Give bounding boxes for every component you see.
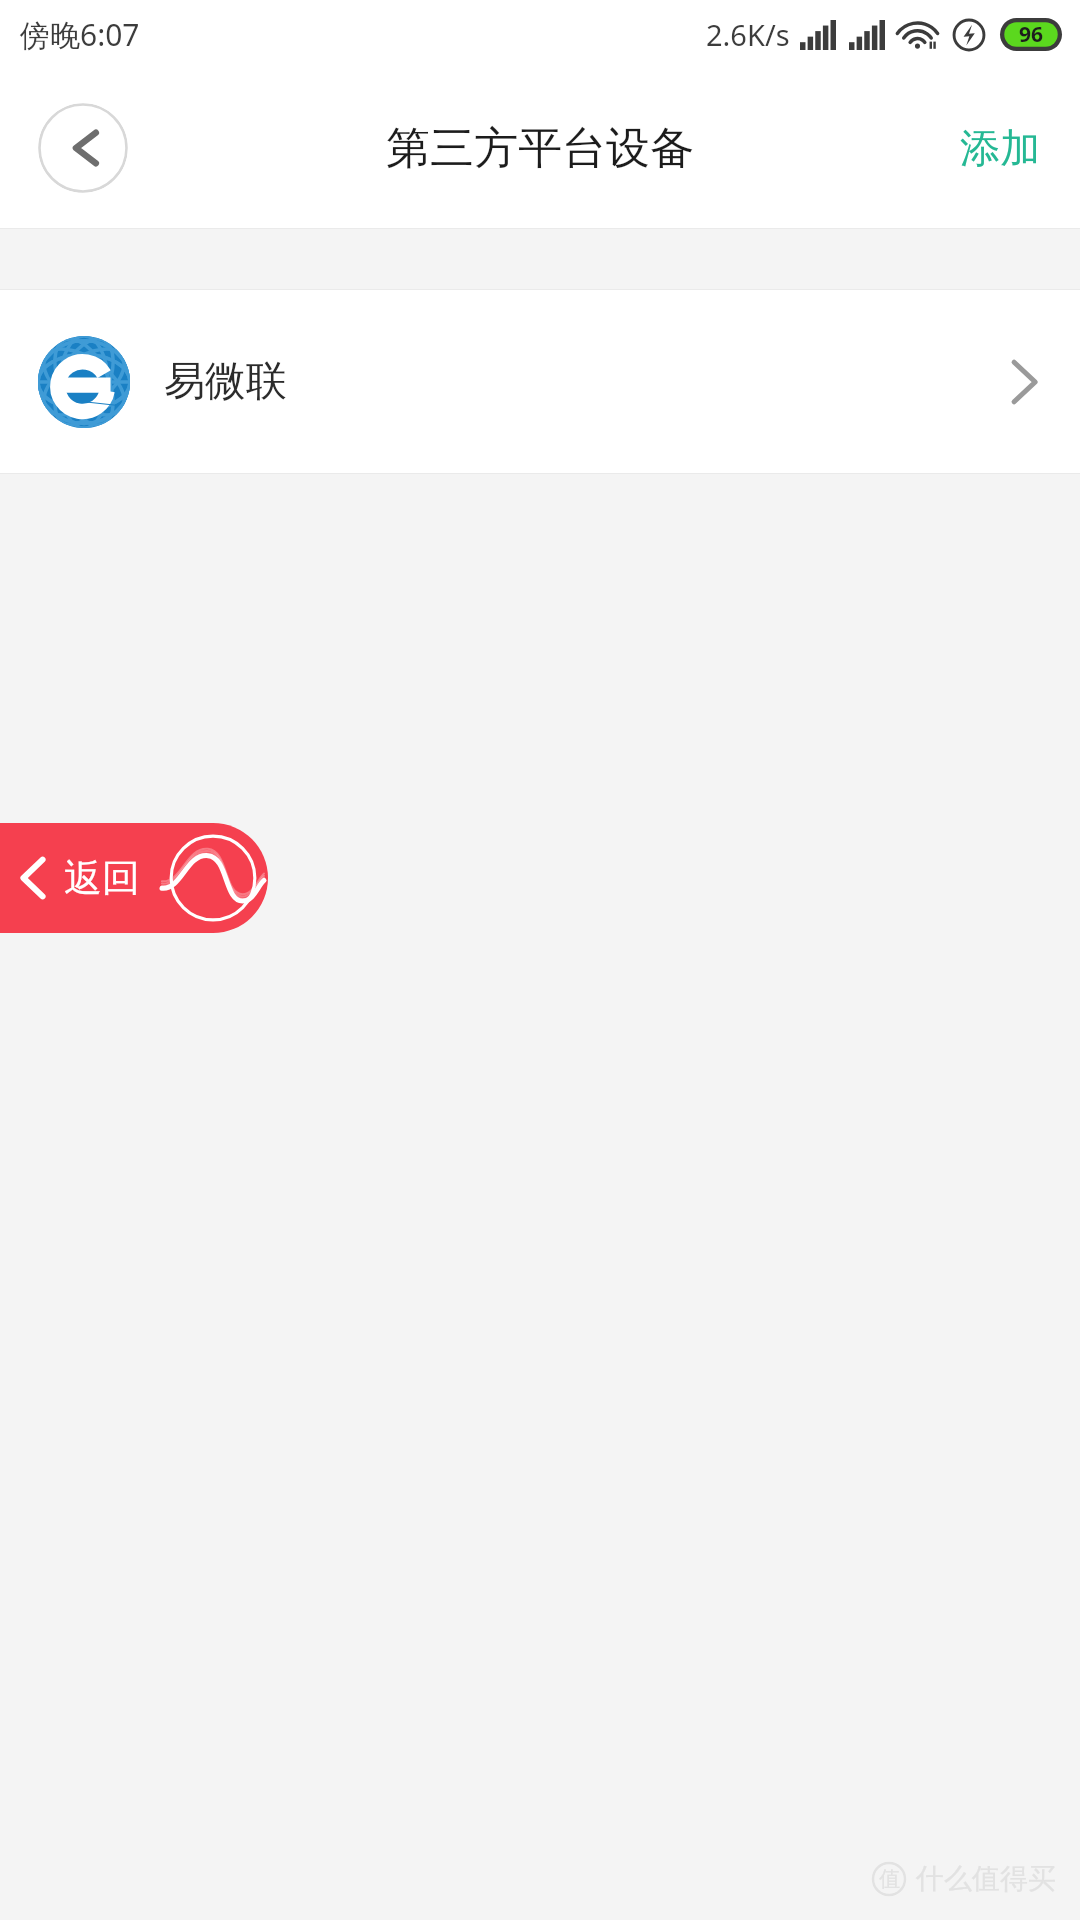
button[interactable]: 添加 (932, 109, 1068, 187)
staticText: 傍晚6:07 (20, 14, 140, 55)
button[interactable]: 返回 (38, 103, 128, 193)
staticText: 什么值得买 (916, 1861, 1056, 1896)
button[interactable]: 易微联 (0, 290, 1080, 473)
button[interactable]: 返回 (0, 823, 268, 933)
staticText: 添加 (960, 123, 1040, 173)
staticText: 96 (1019, 20, 1044, 49)
staticText: 第三方平台设备 (386, 121, 694, 176)
staticText: 易微联 (164, 356, 287, 408)
staticText: 返回 (64, 854, 140, 902)
staticText: 值 (879, 1866, 900, 1892)
staticText: 2.6K/s (706, 15, 790, 54)
